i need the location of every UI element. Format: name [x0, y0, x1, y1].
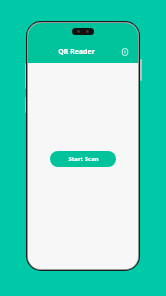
button[interactable]: Start Scan	[50, 151, 116, 167]
staticText: Start Scan	[68, 155, 99, 163]
staticText: QR Reader	[58, 47, 95, 57]
button[interactable]: Info	[116, 43, 134, 61]
